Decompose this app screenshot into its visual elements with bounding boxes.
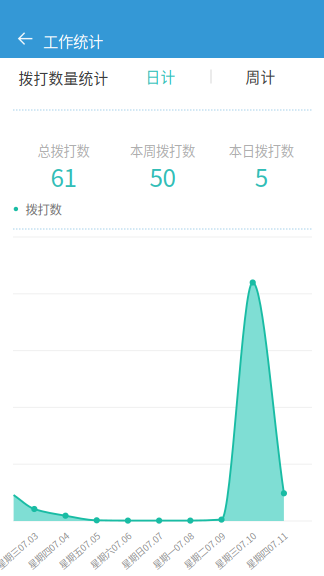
button[interactable]: Back	[7, 16, 43, 60]
staticText: 61	[50, 159, 76, 194]
button[interactable]: 周计	[226, 58, 294, 94]
staticText: 本日拨打数	[229, 141, 294, 160]
staticText: 星期四07.11	[242, 543, 292, 557]
staticText: 50	[149, 159, 175, 194]
staticText: 星期六07.06	[86, 543, 136, 557]
staticText: 星期二07.09	[179, 543, 229, 557]
staticText: 5	[255, 159, 268, 194]
button[interactable]: 日计	[127, 58, 195, 94]
staticText: 星期三07.03	[0, 543, 42, 557]
staticText: 总拨打数	[37, 141, 89, 160]
staticText: 拨打数	[25, 200, 61, 218]
staticText: 星期三07.10	[210, 543, 260, 557]
staticText: 日计	[146, 66, 176, 87]
staticText: 星期一07.08	[148, 543, 198, 557]
staticText: 星期日07.07	[117, 543, 167, 557]
staticText: 周计	[245, 66, 275, 87]
staticText: 星期四07.04	[23, 543, 73, 557]
staticText: 拨打数量统计	[19, 67, 109, 88]
staticText: 本周拨打数	[130, 141, 195, 160]
staticText: 星期五07.05	[54, 543, 104, 557]
staticText: 工作统计	[43, 29, 103, 52]
